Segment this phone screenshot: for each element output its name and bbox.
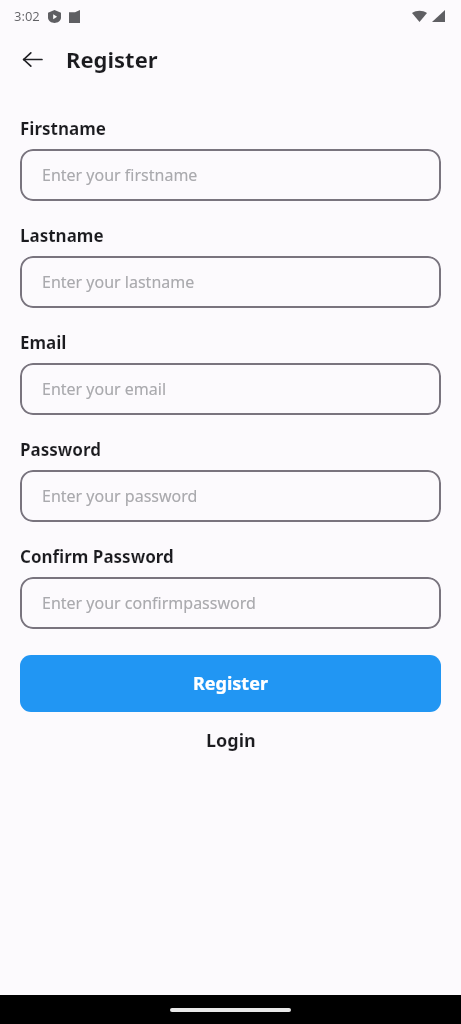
staticText: Login <box>206 728 256 753</box>
staticText: 3:02 <box>14 7 40 25</box>
button[interactable]: Enter your email <box>20 363 441 415</box>
button[interactable]: Register <box>20 655 441 712</box>
staticText: Lastname <box>20 224 104 247</box>
button[interactable]: Enter your firstname <box>20 149 441 201</box>
staticText: Register <box>66 44 158 74</box>
staticText: Enter your lastname <box>42 271 195 293</box>
staticText: Confirm Password <box>20 545 174 568</box>
button[interactable]: Enter your confirmpassword <box>20 577 441 629</box>
staticText: Enter your confirmpassword <box>42 592 256 614</box>
button[interactable]: Enter your lastname <box>20 256 441 308</box>
staticText: Register <box>193 671 268 696</box>
staticText: Firstname <box>20 117 106 140</box>
button[interactable]: Back <box>12 39 52 79</box>
staticText: Enter your firstname <box>42 164 198 186</box>
button[interactable]: Login <box>0 728 461 753</box>
staticText: Email <box>20 331 67 354</box>
staticText: Enter your password <box>42 485 198 507</box>
staticText: Enter your email <box>42 378 167 400</box>
button[interactable]: Enter your password <box>20 470 441 522</box>
staticText: Password <box>20 438 101 461</box>
